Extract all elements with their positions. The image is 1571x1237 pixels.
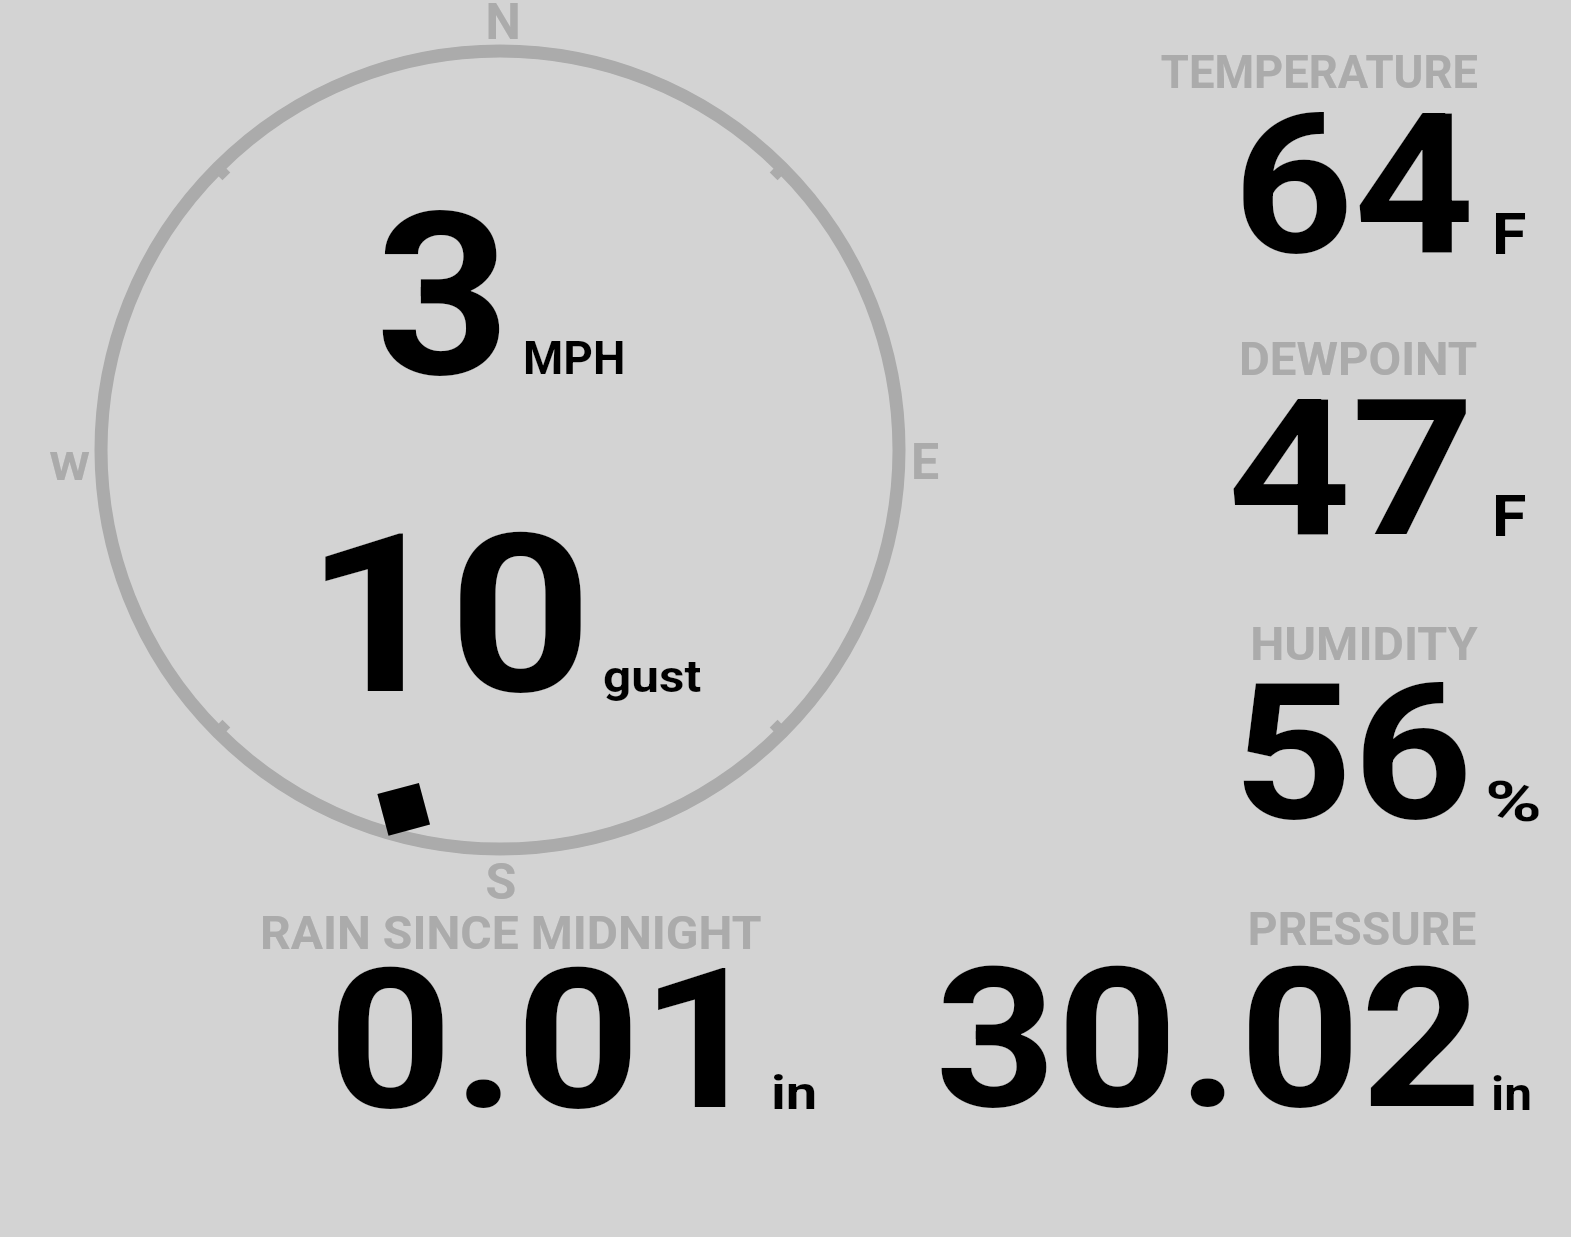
button[interactable]: TEMPERATURE 64 F [1000, 0, 1571, 285]
button[interactable]: DEWPOINT 47 F [1000, 285, 1571, 570]
button[interactable]: Wind 3 MPH, gusting 10, from the south s… [0, 0, 1000, 905]
button[interactable]: HUMIDITY 56 % [1000, 570, 1571, 855]
button[interactable]: PRESSURE 30.02 in [880, 855, 1571, 1237]
button[interactable]: RAIN SINCE MIDNIGHT 0.01 in [0, 855, 880, 1237]
